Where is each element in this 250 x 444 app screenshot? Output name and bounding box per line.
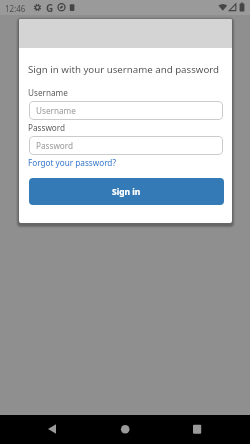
staticText: Sign in with your username and password: [28, 63, 220, 76]
button[interactable]: Forgot your password?: [28, 157, 116, 168]
button[interactable]: [84, 415, 167, 444]
staticText: Username: [36, 105, 76, 116]
button[interactable]: Password: [29, 136, 223, 155]
button[interactable]: [167, 415, 250, 444]
staticText: Sign in: [112, 186, 141, 198]
staticText: G: [46, 1, 54, 15]
button[interactable]: [0, 415, 84, 444]
button[interactable]: Sign in: [29, 178, 224, 205]
staticText: Password: [36, 140, 74, 151]
staticText: 12:46: [5, 3, 26, 14]
button[interactable]: Username: [29, 101, 223, 120]
staticText: Password: [28, 122, 66, 133]
staticText: Username: [28, 87, 68, 98]
